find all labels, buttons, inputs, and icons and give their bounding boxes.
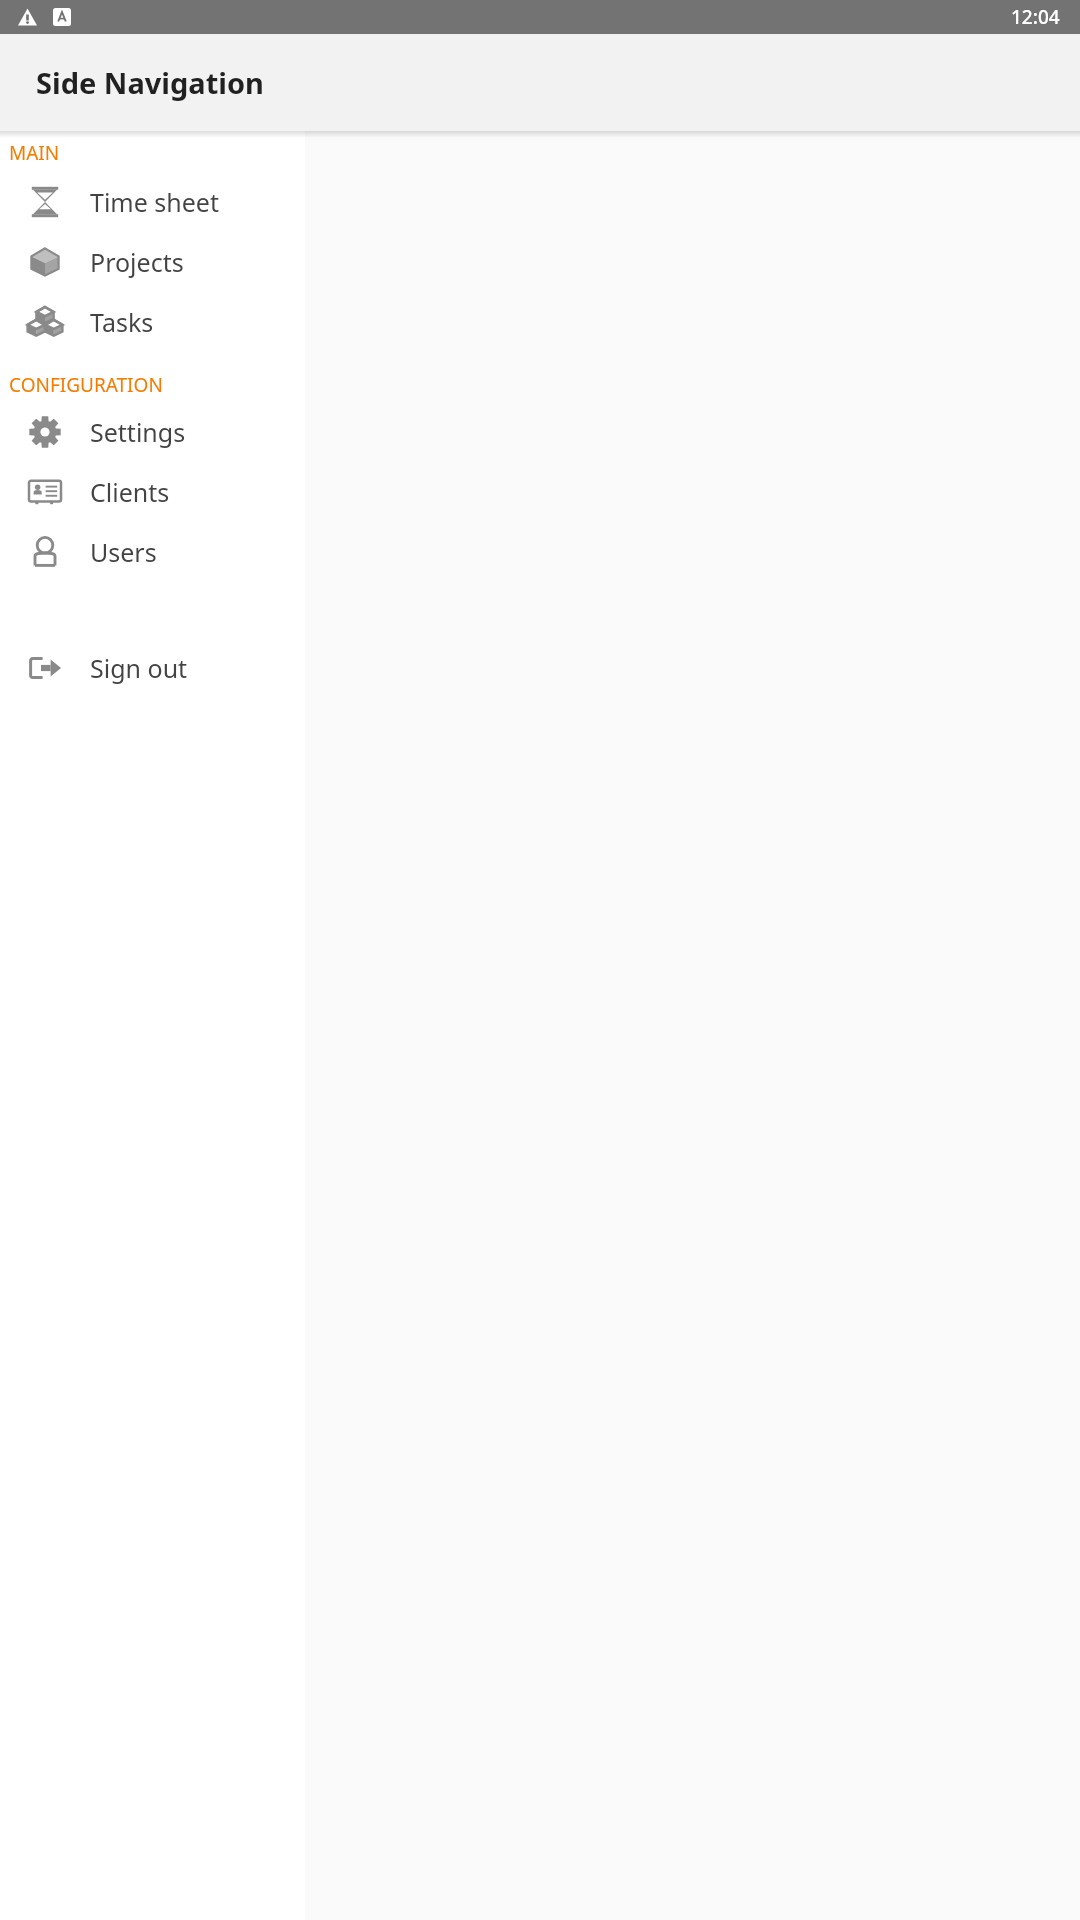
button[interactable]: Projects [0, 232, 305, 292]
staticText: Users [90, 535, 157, 569]
staticText: Time sheet [90, 185, 219, 219]
staticText: Side Navigation [36, 63, 264, 102]
staticText: Sign out [90, 651, 188, 685]
button[interactable]: Tasks [0, 292, 305, 352]
staticText: CONFIGURATION [9, 372, 163, 398]
button[interactable]: Time sheet [0, 172, 305, 232]
button[interactable]: Clients [0, 462, 305, 522]
staticText: Tasks [90, 305, 154, 339]
staticText: Projects [90, 245, 184, 279]
staticText: MAIN [9, 140, 60, 166]
staticText: 12:04 [1011, 4, 1060, 30]
button[interactable]: Settings [0, 402, 305, 462]
staticText: Clients [90, 475, 170, 509]
staticText: Settings [90, 415, 186, 449]
button[interactable]: Sign out [0, 638, 305, 698]
button[interactable]: Users [0, 522, 305, 582]
